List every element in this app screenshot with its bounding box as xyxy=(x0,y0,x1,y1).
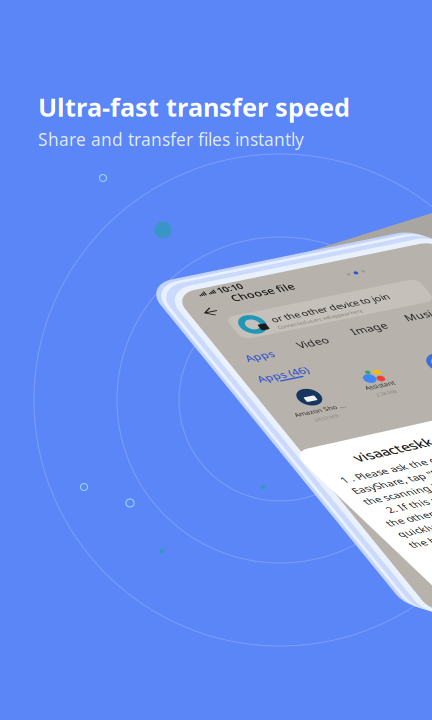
staticText: the hotspot. xyxy=(16,133,78,148)
staticText: 12.1 MB xyxy=(166,167,185,174)
staticText: Ultra-fast transfer speed xyxy=(38,90,350,124)
staticText: Apps (46) xyxy=(18,114,65,128)
staticText: 2. If this user is already in xyxy=(16,86,159,101)
staticText: Apps xyxy=(22,88,48,102)
staticText: Share and transfer files instantly xyxy=(38,128,304,151)
staticText: the other party's list, tap to xyxy=(16,102,154,116)
